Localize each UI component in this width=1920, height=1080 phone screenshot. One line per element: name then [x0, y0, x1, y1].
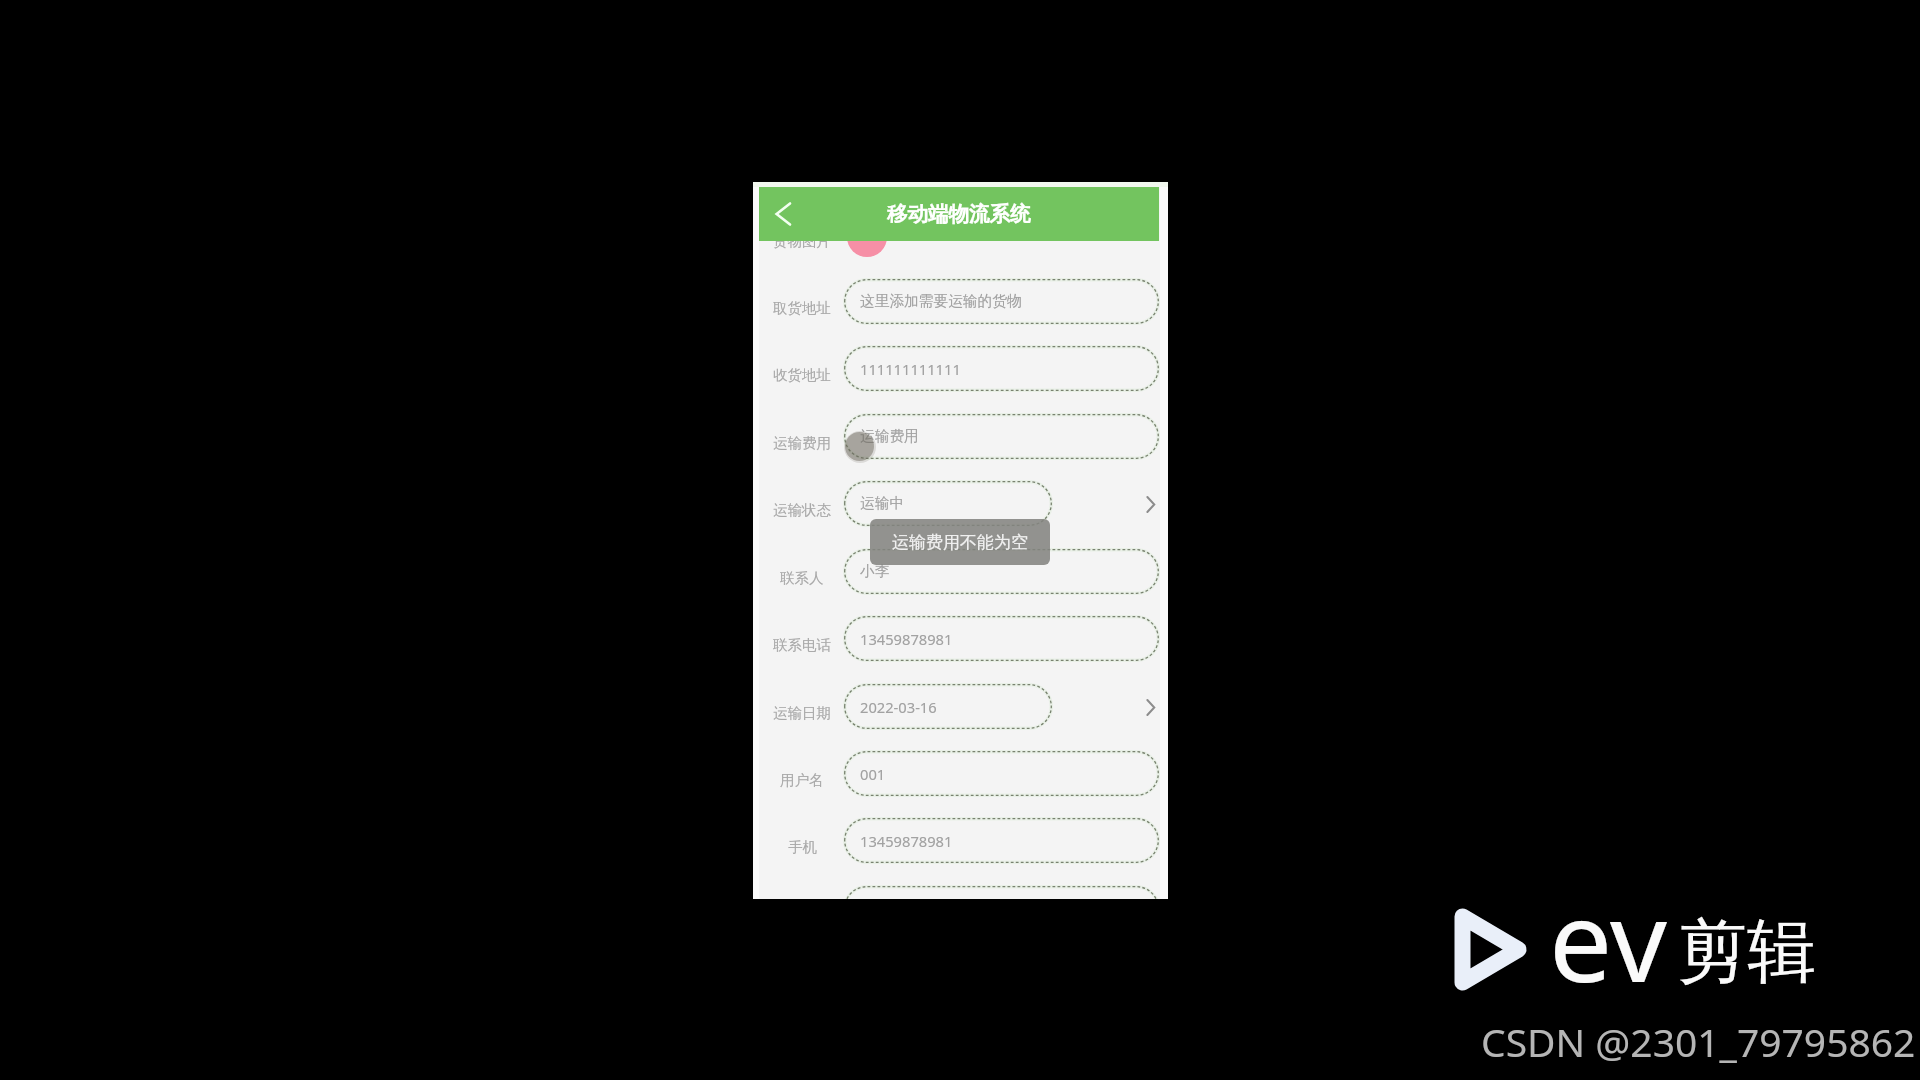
button[interactable]: 收货地址	[753, 335, 1168, 402]
staticText: 001	[860, 764, 886, 784]
button[interactable]: Open 运输日期 picker	[1139, 696, 1161, 718]
staticText: 联系电话	[773, 636, 831, 654]
staticText: CSDN @2301_79795862	[1481, 1015, 1916, 1068]
button[interactable]: 货物图片	[753, 201, 1168, 268]
staticText: 13459878981	[860, 831, 953, 851]
staticText: 联系人	[780, 569, 824, 587]
staticText: 运输费用	[860, 427, 919, 446]
staticText: 运输费用	[773, 434, 831, 452]
staticText: 货物图片	[773, 232, 831, 250]
button[interactable]: 运输状态	[753, 470, 1168, 537]
staticText: 小李	[860, 562, 890, 581]
button[interactable]: Back	[759, 187, 807, 241]
staticText: 运输费用不能为空	[892, 532, 1028, 553]
staticText: 取货地址	[773, 299, 831, 317]
staticText: 111111111111	[860, 359, 961, 379]
button[interactable]: 运输日期	[753, 673, 1168, 740]
staticText: 这里添加需要运输的货物	[860, 292, 1022, 311]
staticText: 运输中	[860, 494, 905, 513]
staticText: 2022-03-16	[860, 697, 937, 717]
staticText: 移动端物流系统	[887, 201, 1031, 227]
button[interactable]: 运输费用	[753, 403, 1168, 470]
staticText: 运输日期	[773, 704, 831, 722]
staticText: 13459878981	[860, 629, 953, 649]
staticText: 剪辑	[1678, 909, 1816, 996]
button[interactable]: 联系电话	[753, 605, 1168, 672]
staticText: 用户名	[780, 771, 824, 789]
button[interactable]: Open 运输状态 picker	[1139, 493, 1161, 515]
button[interactable]: 取货地址	[753, 268, 1168, 335]
staticText: 手机	[788, 838, 817, 856]
staticText: 收货地址	[773, 366, 831, 384]
staticText: 运输状态	[773, 501, 831, 519]
button[interactable]: 用户名	[753, 740, 1168, 807]
button[interactable]: 手机	[753, 807, 1168, 874]
button[interactable]	[753, 875, 1168, 899]
staticText: ev	[1549, 862, 1667, 1015]
button[interactable]: 联系人	[753, 538, 1168, 605]
